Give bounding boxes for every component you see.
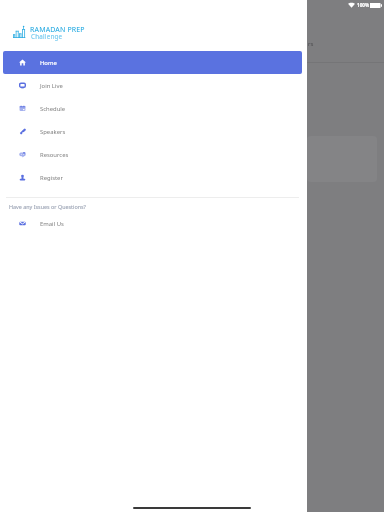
button[interactable]: Close navigation drawer xyxy=(307,0,384,512)
staticText: Schedule xyxy=(40,105,66,113)
button[interactable]: Resources xyxy=(3,143,302,166)
staticText: Register xyxy=(40,174,63,182)
staticText: RAMADAN PREP xyxy=(30,25,85,35)
button[interactable]: Email Us xyxy=(3,212,302,235)
button[interactable]: Home xyxy=(3,51,302,74)
staticText: Have any Issues or Questions? xyxy=(9,203,86,210)
staticText: rs xyxy=(308,40,314,48)
staticText: 100% xyxy=(357,2,370,8)
staticText: Speakers xyxy=(40,128,66,136)
button[interactable]: Schedule xyxy=(3,97,302,120)
button[interactable]: Register xyxy=(3,166,302,189)
button[interactable]: Speakers xyxy=(3,120,302,143)
staticText: Home xyxy=(40,59,57,67)
staticText: Resources xyxy=(40,151,69,159)
staticText: Email Us xyxy=(40,220,64,228)
staticText: Join Live xyxy=(40,82,63,90)
staticText: Challenge xyxy=(31,32,63,40)
button[interactable]: Join Live xyxy=(3,74,302,97)
